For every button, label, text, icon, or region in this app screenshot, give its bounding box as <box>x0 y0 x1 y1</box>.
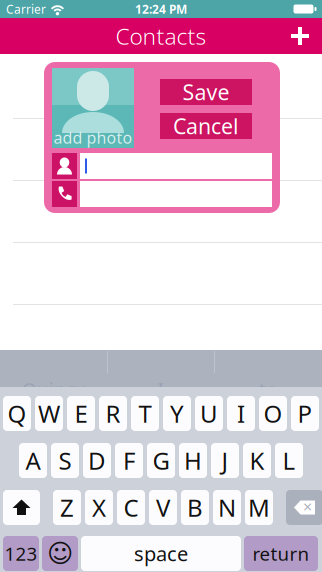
button[interactable]: Y <box>163 396 191 431</box>
button[interactable]: Save <box>160 79 252 105</box>
staticText: 123 <box>4 541 37 566</box>
staticText: T <box>138 398 151 429</box>
button[interactable]: Z <box>53 490 81 525</box>
button[interactable]: H <box>179 443 207 478</box>
button[interactable]: X <box>85 490 113 525</box>
staticText: B <box>187 492 203 523</box>
button[interactable]: G <box>147 443 175 478</box>
button[interactable]: C <box>117 490 145 525</box>
staticText: L <box>282 445 295 476</box>
staticText: Q <box>7 398 26 429</box>
staticText: space <box>134 540 188 567</box>
staticText: Carrier <box>6 1 46 17</box>
staticText: Cancel <box>173 112 239 140</box>
button[interactable]: S <box>51 443 79 478</box>
staticText: D <box>88 445 106 476</box>
staticText: S <box>58 445 71 476</box>
button[interactable]: E <box>67 396 95 431</box>
button[interactable]: Cancel <box>160 113 252 139</box>
staticText: Save <box>182 78 229 106</box>
staticText: × <box>303 496 312 517</box>
staticText: G <box>152 445 169 476</box>
button[interactable]: O <box>259 396 287 431</box>
button[interactable]: return <box>244 536 318 571</box>
button[interactable]: W <box>35 396 63 431</box>
button[interactable]: D <box>83 443 111 478</box>
button[interactable] <box>52 153 272 179</box>
button[interactable]: I <box>227 396 255 431</box>
button[interactable]: U <box>195 396 223 431</box>
staticText: C <box>123 492 138 523</box>
button[interactable]: V <box>149 490 177 525</box>
staticText: Z <box>60 492 74 523</box>
staticText: H <box>184 445 202 476</box>
button[interactable]: Delete <box>286 490 322 525</box>
button[interactable]: B <box>181 490 209 525</box>
staticText: R <box>105 398 120 429</box>
staticText: U <box>200 398 218 429</box>
button[interactable]: Add contact <box>278 18 322 54</box>
staticText: return <box>252 541 309 566</box>
button[interactable]: 123 <box>3 536 39 571</box>
staticText: I <box>157 377 163 401</box>
staticText: J <box>221 445 228 476</box>
staticText: O <box>263 398 282 429</box>
staticText: X <box>92 492 106 523</box>
staticText: M <box>248 492 270 523</box>
staticText: V <box>156 492 170 523</box>
button[interactable]: Emoji <box>42 536 78 571</box>
button[interactable]: N <box>213 490 241 525</box>
staticText: 12:24 PM <box>135 1 187 17</box>
button[interactable]: F <box>115 443 143 478</box>
button[interactable]: R <box>99 396 127 431</box>
staticText: P <box>297 398 312 429</box>
staticText: ☺ <box>47 539 73 568</box>
staticText: Y <box>170 398 184 429</box>
staticText: add photo <box>53 127 132 148</box>
button[interactable]: Shift <box>3 490 40 525</box>
staticText: Quincy <box>22 377 85 401</box>
button[interactable]: I <box>107 380 214 398</box>
staticText: N <box>218 492 236 523</box>
staticText: F <box>123 445 135 476</box>
button[interactable]: Add photo <box>52 68 134 148</box>
button[interactable] <box>52 181 272 207</box>
button[interactable]: L <box>275 443 303 478</box>
button[interactable]: Quincy <box>0 380 107 398</box>
button[interactable]: P <box>291 396 319 431</box>
button[interactable]: to <box>214 380 322 398</box>
button[interactable]: J <box>211 443 239 478</box>
button[interactable]: M <box>245 490 273 525</box>
staticText: K <box>249 445 264 476</box>
button[interactable]: A <box>19 443 47 478</box>
button[interactable]: T <box>131 396 159 431</box>
staticText: A <box>25 445 40 476</box>
staticText: Contacts <box>115 21 206 51</box>
button[interactable]: space <box>81 536 241 571</box>
button[interactable]: K <box>243 443 271 478</box>
staticText: to <box>259 377 277 401</box>
button[interactable]: Q <box>3 396 31 431</box>
staticText: I <box>237 398 245 429</box>
staticText: W <box>38 398 60 429</box>
staticText: E <box>74 398 87 429</box>
